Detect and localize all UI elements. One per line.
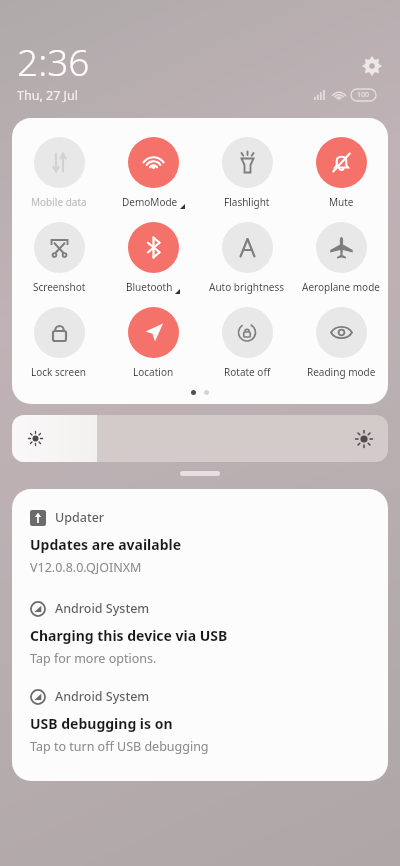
button[interactable]: Settings xyxy=(360,54,384,78)
button[interactable]: Screenshot xyxy=(12,222,106,294)
button[interactable]: Mobile data xyxy=(12,137,106,209)
button[interactable]: Aeroplane mode xyxy=(294,222,388,294)
staticText: Lock screen xyxy=(31,365,87,379)
staticText: Updater xyxy=(55,509,105,526)
button[interactable]: DemoMode xyxy=(106,137,200,209)
staticText: Mobile data xyxy=(31,195,87,209)
staticText: Screenshot xyxy=(33,280,86,294)
staticText: Mute xyxy=(329,195,354,209)
staticText: Flashlight xyxy=(224,195,270,209)
staticText: V12.0.8.0.QJOINXM xyxy=(30,559,142,576)
button[interactable]: Mute xyxy=(294,137,388,209)
button[interactable]: Android System xyxy=(30,600,370,667)
staticText: Reading mode xyxy=(307,365,376,379)
button[interactable]: Location xyxy=(106,307,200,379)
button[interactable]: Lock screen xyxy=(12,307,106,379)
button[interactable]: Reading mode xyxy=(294,307,388,379)
staticText: Aeroplane mode xyxy=(302,280,380,294)
button[interactable]: Android System xyxy=(30,688,370,755)
button[interactable]: Bluetooth xyxy=(106,222,200,294)
staticText: Tap to turn off USB debugging xyxy=(30,738,209,755)
staticText: Tap for more options. xyxy=(30,650,157,667)
staticText: Thu, 27 Jul xyxy=(17,87,78,104)
button[interactable]: Auto brightness xyxy=(200,222,294,294)
staticText: DemoMode xyxy=(122,195,178,209)
staticText: Bluetooth xyxy=(126,280,173,294)
staticText: Location xyxy=(133,365,174,379)
button[interactable]: Updater xyxy=(30,509,370,576)
staticText: Charging this device via USB xyxy=(30,626,228,645)
staticText: Android System xyxy=(55,600,150,617)
staticText: USB debugging is on xyxy=(30,714,173,733)
button[interactable] xyxy=(12,415,388,462)
button[interactable]: Flashlight xyxy=(200,137,294,209)
staticText: Rotate off xyxy=(224,365,271,379)
staticText: 2:36 xyxy=(17,36,90,86)
staticText: Updates are available xyxy=(30,535,182,554)
staticText: Android System xyxy=(55,688,150,705)
staticText: Auto brightness xyxy=(209,280,285,294)
staticText: 100 xyxy=(357,90,370,100)
button[interactable]: Rotate off xyxy=(200,307,294,379)
